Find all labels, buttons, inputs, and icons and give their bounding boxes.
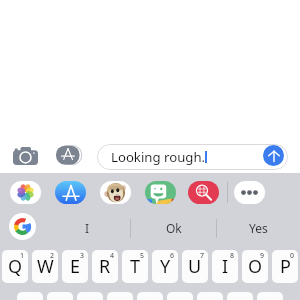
button[interactable]: Photos [10, 181, 41, 204]
button[interactable]: Memoji [100, 181, 131, 204]
button[interactable]: I [44, 209, 130, 246]
staticText: 4 [110, 251, 115, 261]
staticText: U [188, 254, 202, 279]
button[interactable]: E [62, 250, 88, 283]
staticText: W [37, 254, 54, 279]
staticText: Looking rough. [111, 148, 206, 166]
staticText: 3 [80, 251, 85, 261]
button[interactable]: Y [152, 250, 178, 283]
button[interactable]: A [17, 292, 43, 300]
staticText: R [99, 254, 111, 279]
staticText: 7 [200, 251, 205, 261]
staticText: Ok [166, 220, 182, 236]
button[interactable]: U [182, 250, 208, 283]
button[interactable]: I [212, 250, 238, 283]
staticText: 2 [50, 251, 55, 261]
button[interactable]: App Store [54, 143, 82, 166]
staticText: I [222, 254, 229, 279]
staticText: 5 [140, 251, 145, 261]
button[interactable]: L [257, 292, 283, 300]
button[interactable]: R [92, 250, 118, 283]
button[interactable]: K [227, 292, 253, 300]
button[interactable]: Send [263, 145, 284, 166]
staticText: 1 [20, 251, 25, 261]
button[interactable]: Q [2, 250, 28, 283]
button[interactable]: J [197, 292, 223, 300]
staticText: 8 [230, 251, 235, 261]
button[interactable]: F [107, 292, 133, 300]
staticText: 6 [170, 251, 175, 261]
button[interactable]: GIF search [188, 181, 219, 204]
staticText: E [70, 254, 81, 279]
button[interactable]: O [242, 250, 268, 283]
staticText: Q [8, 254, 23, 279]
button[interactable]: H [167, 292, 193, 300]
button[interactable]: S [47, 292, 73, 300]
staticText: 9 [260, 251, 265, 261]
staticText: Y [160, 254, 171, 279]
staticText: T [130, 254, 141, 279]
button[interactable]: Ok [131, 209, 216, 246]
button[interactable]: Camera [11, 143, 40, 169]
button[interactable]: More apps [234, 181, 265, 204]
button[interactable]: Google [9, 213, 36, 240]
staticText: O [248, 254, 263, 279]
button[interactable]: Yes [217, 209, 300, 246]
button[interactable]: W [32, 250, 58, 283]
staticText: Yes [249, 220, 268, 236]
staticText: I [85, 220, 90, 236]
button[interactable]: G [137, 292, 163, 300]
button[interactable]: Looking rough. [97, 144, 288, 170]
button[interactable]: T [122, 250, 148, 283]
button[interactable]: Messages [145, 181, 176, 204]
staticText: 0 [290, 251, 295, 261]
staticText: P [280, 254, 291, 279]
button[interactable]: D [77, 292, 103, 300]
button[interactable]: P [272, 250, 298, 283]
button[interactable]: App Store [55, 181, 86, 204]
